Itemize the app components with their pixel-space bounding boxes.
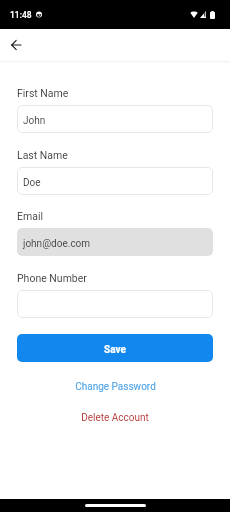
staticText: 11:48 xyxy=(10,10,32,20)
staticText: Phone Number xyxy=(17,272,87,284)
staticText: Email xyxy=(17,210,43,222)
staticText: Delete Account xyxy=(81,412,149,424)
button[interactable]: Delete Account xyxy=(17,412,213,424)
staticText: john@doe.com xyxy=(23,238,91,250)
button[interactable]: john@doe.com xyxy=(17,228,213,256)
staticText: Save xyxy=(104,344,126,356)
staticText: Change Password xyxy=(75,381,156,393)
button[interactable]: Save xyxy=(17,334,213,362)
staticText: Last Name xyxy=(17,149,68,161)
staticText: Doe xyxy=(23,177,41,189)
staticText: First Name xyxy=(17,87,69,99)
button[interactable]: John xyxy=(17,105,213,133)
button[interactable]: Doe xyxy=(17,167,213,195)
button[interactable] xyxy=(17,290,213,318)
staticText: John xyxy=(23,115,46,127)
button[interactable]: Change Password xyxy=(17,381,213,393)
button[interactable]: Back xyxy=(4,33,28,57)
